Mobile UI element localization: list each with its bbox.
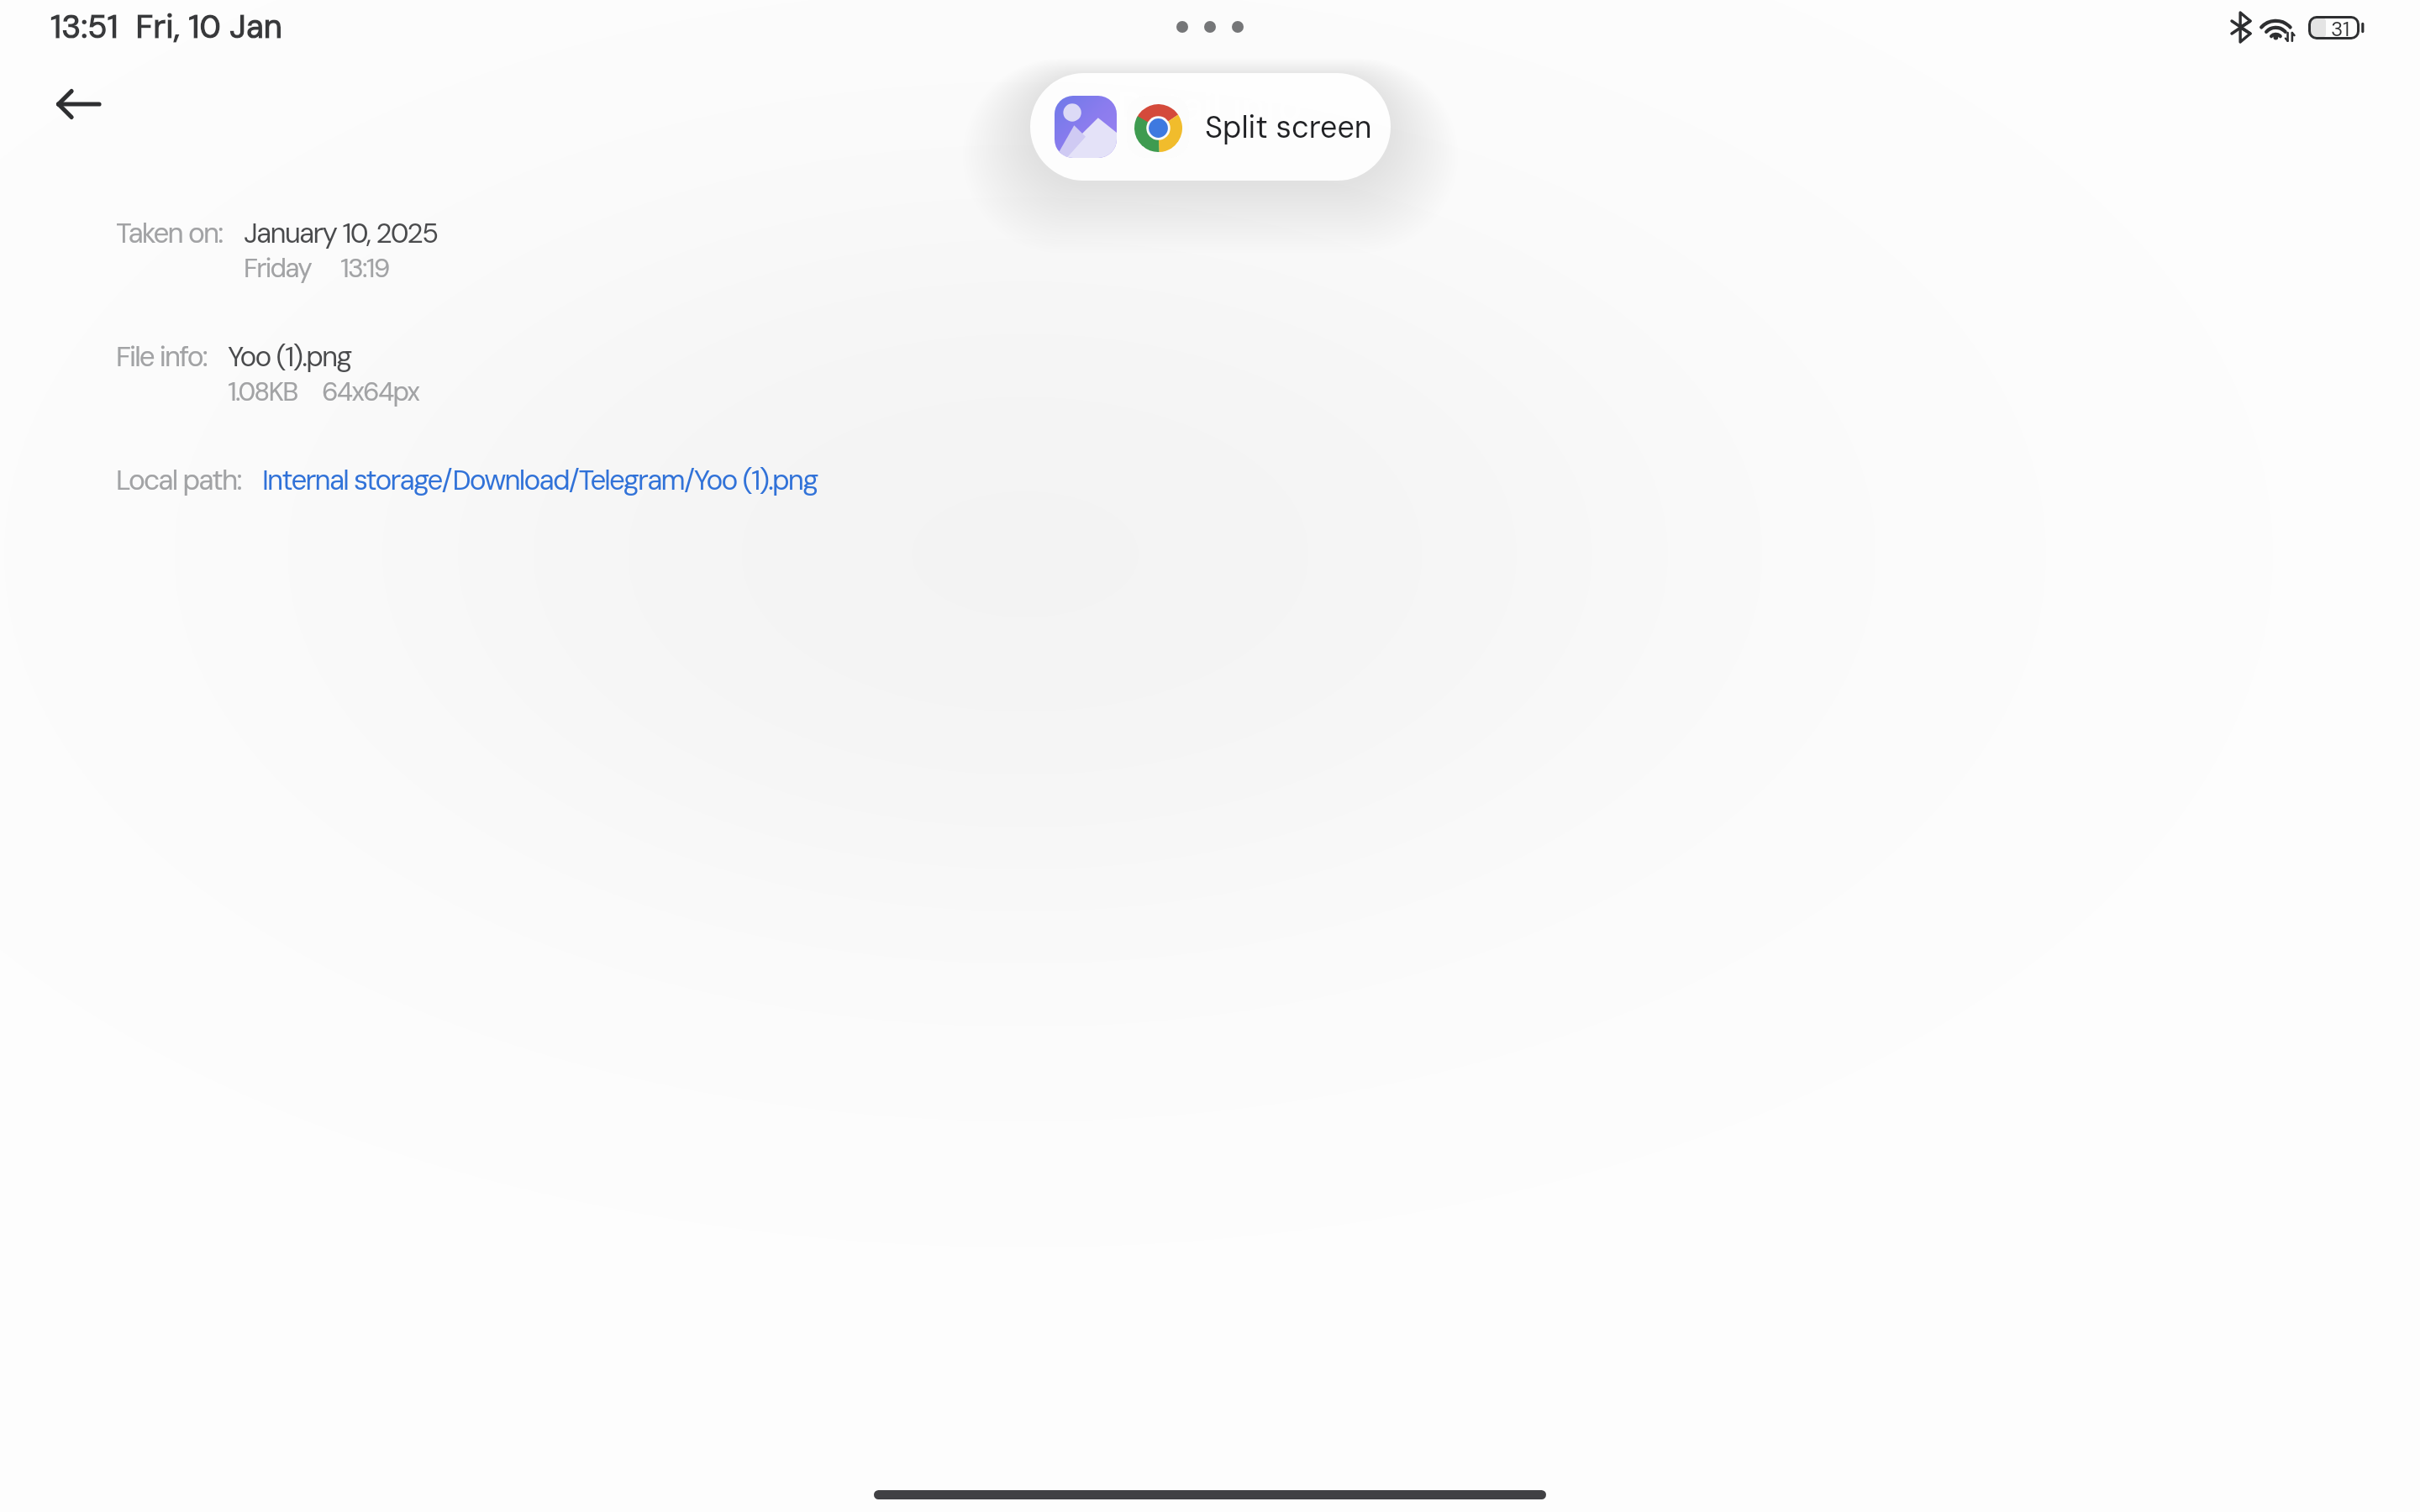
staticText: Taken on: xyxy=(116,215,223,251)
staticText: Local path: xyxy=(116,462,241,498)
staticText: January 10, 2025 xyxy=(244,215,438,251)
staticText: 1.08KB xyxy=(228,375,297,409)
staticText: Detail info xyxy=(1118,81,1302,132)
staticText: Internal storage/Download/Telegram/Yoo (… xyxy=(262,462,818,498)
staticText: 13:19 xyxy=(340,251,389,286)
staticText: 31 xyxy=(2331,16,2350,39)
staticText: Yoo (1).png xyxy=(228,339,351,375)
button[interactable]: Back xyxy=(45,71,112,138)
button[interactable]: Internal storage/Download/Telegram/Yoo (… xyxy=(262,462,818,498)
button[interactable]: Split screen xyxy=(1030,73,1391,181)
staticText: 13:51 Fri, 10 Jan xyxy=(50,6,283,48)
staticText: Friday xyxy=(244,251,312,286)
staticText: File info: xyxy=(116,339,207,375)
staticText: Split screen xyxy=(1205,108,1372,147)
staticText: 64x64px xyxy=(322,375,419,409)
